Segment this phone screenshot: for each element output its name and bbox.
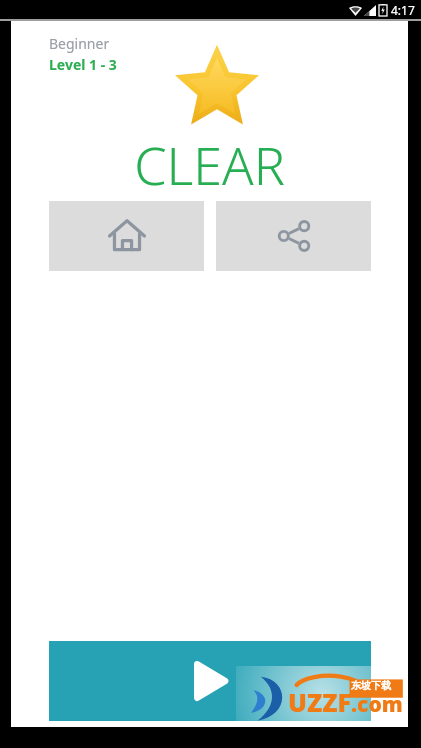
staticText: 东坡下载 <box>351 679 391 692</box>
staticText: UZZF <box>288 685 351 719</box>
staticText: Level 1 - 3 <box>49 55 117 74</box>
staticText: 4:17 <box>391 2 415 18</box>
button[interactable]: Share <box>216 201 371 271</box>
button[interactable]: Play <box>49 641 371 721</box>
staticText: Beginner <box>49 34 110 53</box>
staticText: .com <box>351 690 403 719</box>
staticText: CLEAR <box>11 129 408 200</box>
button[interactable]: Home <box>49 201 204 271</box>
